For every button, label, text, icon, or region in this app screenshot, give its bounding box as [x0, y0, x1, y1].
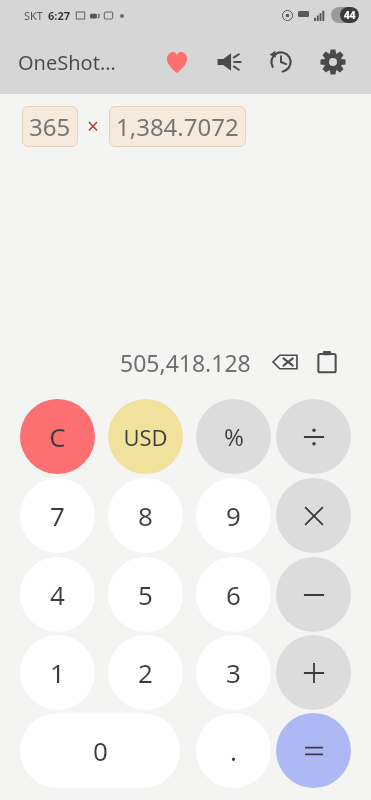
button[interactable]: Announcements	[207, 40, 251, 84]
staticText: 7	[50, 498, 65, 533]
button[interactable]: 6	[196, 557, 271, 632]
button[interactable]: 365	[22, 106, 78, 147]
button[interactable]: Backspace	[267, 344, 303, 380]
button[interactable]: .	[196, 713, 271, 788]
staticText: 365	[29, 110, 71, 143]
button[interactable]: 4	[20, 557, 95, 632]
staticText: 5	[138, 577, 153, 612]
button[interactable]: 2	[108, 635, 183, 710]
button[interactable]: Favorite	[155, 40, 199, 84]
staticText: 6	[226, 577, 241, 612]
button[interactable]: 8	[108, 478, 183, 553]
button[interactable]: 3	[196, 635, 271, 710]
button[interactable]: 7	[20, 478, 95, 553]
button[interactable]: USD	[108, 399, 183, 474]
staticText: ×	[87, 112, 100, 141]
button[interactable]: C	[20, 399, 95, 474]
button[interactable]: Operator	[276, 557, 351, 632]
staticText: 1	[50, 655, 65, 690]
button[interactable]: Operator	[276, 635, 351, 710]
staticText: 6:27	[48, 8, 70, 23]
staticText: 4	[50, 577, 65, 612]
staticText: 0	[93, 733, 108, 768]
staticText: 8	[138, 498, 153, 533]
staticText: %	[224, 420, 244, 453]
staticText: 1,384.7072	[116, 110, 239, 143]
staticText: .	[230, 733, 237, 768]
button[interactable]: Operator	[276, 478, 351, 553]
staticText: 3	[226, 655, 241, 690]
button[interactable]: Operator	[276, 399, 351, 474]
button[interactable]: Operator	[276, 713, 351, 788]
button[interactable]: 1	[20, 635, 95, 710]
button[interactable]: %	[196, 399, 271, 474]
staticText: SKT	[24, 8, 43, 23]
staticText: OneShot…	[18, 49, 116, 76]
staticText: USD	[123, 422, 168, 452]
button[interactable]: History	[259, 40, 303, 84]
button[interactable]: 0	[20, 713, 180, 788]
staticText: 9	[226, 498, 241, 533]
button[interactable]: Settings	[311, 40, 355, 84]
staticText: 505,418.128	[120, 347, 251, 378]
button[interactable]: Copy to clipboard	[309, 344, 345, 380]
staticText: 2	[138, 655, 153, 690]
button[interactable]: 1,384.7072	[109, 106, 246, 147]
staticText: 44	[344, 8, 356, 22]
button[interactable]: 5	[108, 557, 183, 632]
button[interactable]: 9	[196, 478, 271, 553]
staticText: C	[49, 419, 66, 454]
